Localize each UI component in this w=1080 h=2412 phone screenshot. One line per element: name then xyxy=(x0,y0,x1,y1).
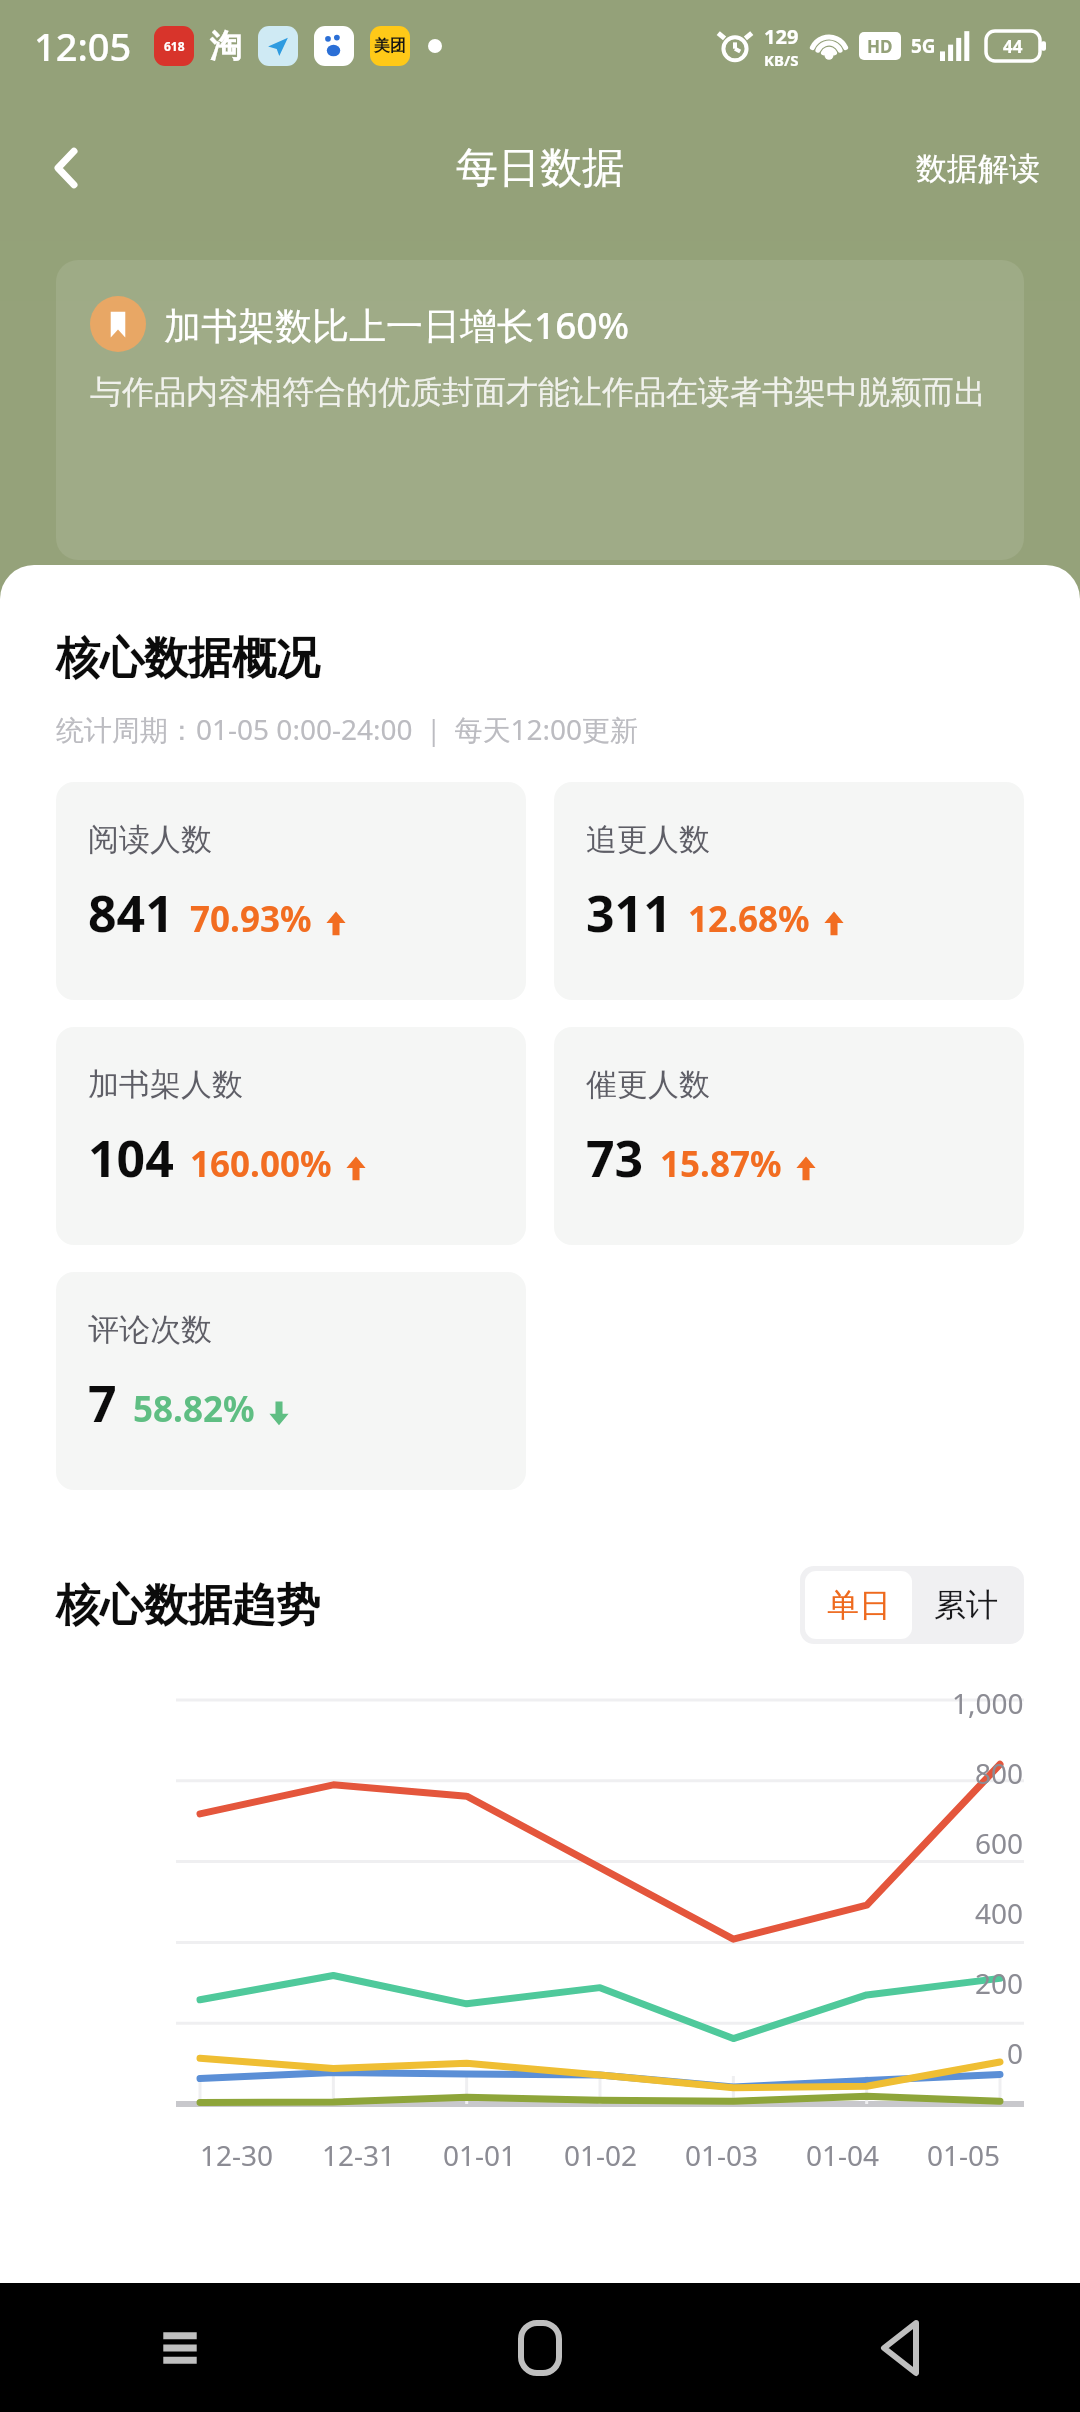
staticText: 400 xyxy=(975,1894,1024,1932)
staticText: 12-31 xyxy=(322,2136,396,2174)
staticText: 追更人数 xyxy=(586,820,710,859)
other: Alarm xyxy=(718,29,752,63)
button[interactable]: 累计 xyxy=(912,1571,1019,1639)
staticText: 5G xyxy=(911,33,936,59)
staticText: 核心数据概况 xyxy=(56,631,320,686)
staticText: 单日 xyxy=(827,1585,891,1625)
button[interactable]: Recents xyxy=(125,2293,235,2403)
button[interactable]: 评论次数 xyxy=(56,1272,526,1490)
staticText: 统计周期：01-05 0:00-24:00 ｜ 每天12:00更新 xyxy=(56,710,639,748)
staticText: 01-02 xyxy=(564,2136,638,2174)
button[interactable]: 加书架人数 xyxy=(56,1027,526,1245)
staticText: 58.82% xyxy=(133,1385,255,1433)
button[interactable]: 催更人数 xyxy=(554,1027,1024,1245)
staticText: 600 xyxy=(975,1824,1024,1862)
button[interactable]: 数据解读 xyxy=(908,133,1048,204)
staticText: 催更人数 xyxy=(586,1065,710,1104)
staticText: 12-30 xyxy=(200,2136,274,2174)
staticText: 1,000 xyxy=(952,1684,1024,1722)
staticText: 01-04 xyxy=(806,2136,880,2174)
staticText: 618 xyxy=(164,38,185,54)
staticText: 200 xyxy=(975,1964,1024,2002)
button[interactable]: 追更人数 xyxy=(554,782,1024,1000)
staticText: 01-01 xyxy=(443,2136,517,2174)
staticText: 7 xyxy=(88,1369,117,1437)
button[interactable]: 单日 xyxy=(805,1571,912,1639)
staticText: 数据解读 xyxy=(916,149,1040,188)
staticText: 累计 xyxy=(934,1585,998,1625)
staticText: 加书架人数 xyxy=(88,1065,243,1104)
button[interactable]: Back xyxy=(845,2293,955,2403)
staticText: 01-03 xyxy=(685,2136,759,2174)
staticText: 104 xyxy=(88,1124,174,1192)
button[interactable]: 阅读人数 xyxy=(56,782,526,1000)
staticText: 129 xyxy=(764,23,799,50)
staticText: 160.00% xyxy=(190,1140,332,1188)
staticText: 841 xyxy=(88,879,174,947)
staticText: HD xyxy=(867,35,893,58)
staticText: 核心数据趋势 xyxy=(56,1578,320,1633)
staticText: 73 xyxy=(586,1124,644,1192)
staticText: 44 xyxy=(1003,35,1023,58)
button[interactable]: Back xyxy=(26,128,106,208)
staticText: 美团 xyxy=(374,36,406,56)
staticText: 评论次数 xyxy=(88,1310,212,1349)
staticText: 阅读人数 xyxy=(88,820,212,859)
staticText: 每日数据 xyxy=(456,142,624,195)
staticText: 与作品内容相符合的优质封面才能让作品在读者书架中脱颖而出 xyxy=(90,372,986,412)
staticText: 311 xyxy=(586,879,672,947)
staticText: 01-05 xyxy=(927,2136,1001,2174)
staticText: 70.93% xyxy=(190,895,312,943)
staticText: 12:05 xyxy=(34,20,132,72)
staticText: 15.87% xyxy=(660,1140,782,1188)
button[interactable]: 加书架数比上一日增长160% xyxy=(56,260,1024,560)
staticText: 加书架数比上一日增长160% xyxy=(164,299,630,350)
staticText: 淘 xyxy=(210,26,242,66)
staticText: KB/S xyxy=(764,50,799,70)
staticText: 800 xyxy=(975,1754,1024,1792)
staticText: 0 xyxy=(1007,2034,1024,2072)
staticText: 12.68% xyxy=(688,895,810,943)
button[interactable]: Home xyxy=(485,2293,595,2403)
